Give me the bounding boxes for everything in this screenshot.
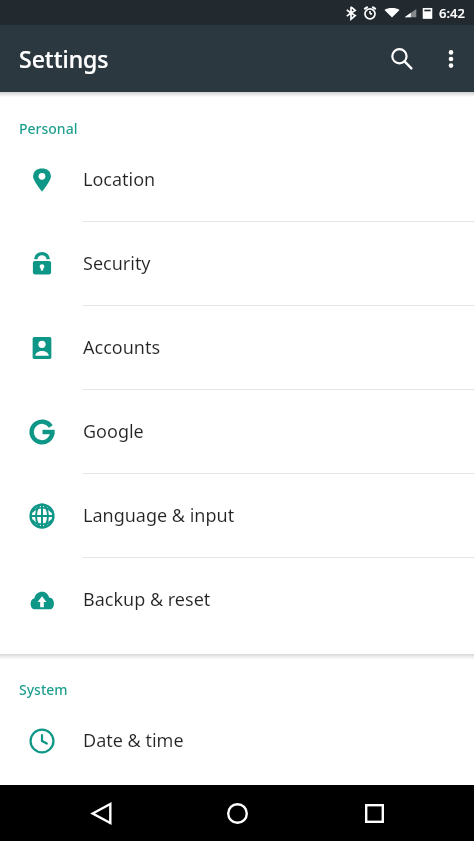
button[interactable]: Date & time: [0, 699, 474, 782]
staticText: Accounts: [83, 335, 161, 360]
button[interactable]: Backup & reset: [0, 558, 474, 641]
staticText: Date & time: [83, 728, 184, 753]
button[interactable]: Google: [0, 390, 474, 474]
button[interactable]: Search: [374, 25, 428, 92]
button[interactable]: Back: [65, 785, 137, 841]
staticText: Language & input: [83, 503, 235, 528]
button[interactable]: Security: [0, 222, 474, 306]
staticText: Security: [83, 251, 151, 276]
staticText: Location: [83, 167, 156, 192]
staticText: 6:42: [439, 4, 465, 22]
staticText: Backup & reset: [83, 587, 211, 612]
button[interactable]: Home: [201, 785, 273, 841]
staticText: Google: [83, 419, 144, 444]
staticText: Personal: [19, 119, 78, 138]
staticText: System: [19, 680, 68, 699]
button[interactable]: More options: [428, 25, 474, 92]
button[interactable]: Accounts: [0, 306, 474, 390]
button[interactable]: Location: [0, 138, 474, 222]
button[interactable]: Language & input: [0, 474, 474, 558]
staticText: Settings: [19, 43, 109, 74]
button[interactable]: Recent apps: [338, 785, 410, 841]
